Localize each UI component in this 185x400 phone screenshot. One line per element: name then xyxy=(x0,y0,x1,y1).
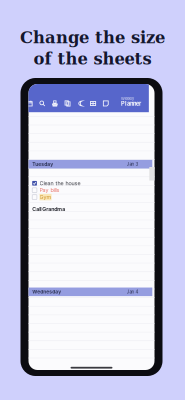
button[interactable]: Stamp xyxy=(51,100,58,107)
button[interactable]: Duplicate xyxy=(64,100,71,107)
button[interactable]: Clean the house xyxy=(28,180,154,187)
staticText: Clean the house xyxy=(39,180,80,187)
button[interactable]: Table xyxy=(90,100,96,107)
staticText: Jan 4 xyxy=(126,289,138,294)
button[interactable]: Gym xyxy=(28,194,154,200)
staticText: Gym xyxy=(39,194,51,200)
button[interactable]: Call Grandma xyxy=(28,206,154,212)
button[interactable]: Pay bills xyxy=(28,187,154,194)
staticText: Pay bills xyxy=(39,187,59,193)
button[interactable]: Search xyxy=(39,100,46,107)
button[interactable]: Note xyxy=(102,100,109,107)
button[interactable]: Calendar xyxy=(26,100,33,107)
staticText: Wednesday xyxy=(32,289,61,295)
button[interactable]: Dark mode xyxy=(77,100,84,107)
staticText: Jan 3 xyxy=(126,162,138,167)
staticText: Change the size xyxy=(20,28,165,47)
staticText: Weekly xyxy=(121,96,134,101)
staticText: of the sheets xyxy=(33,49,151,68)
staticText: Tuesday xyxy=(32,161,53,167)
staticText: Planner xyxy=(121,100,141,107)
staticText: Call Grandma xyxy=(32,206,65,212)
